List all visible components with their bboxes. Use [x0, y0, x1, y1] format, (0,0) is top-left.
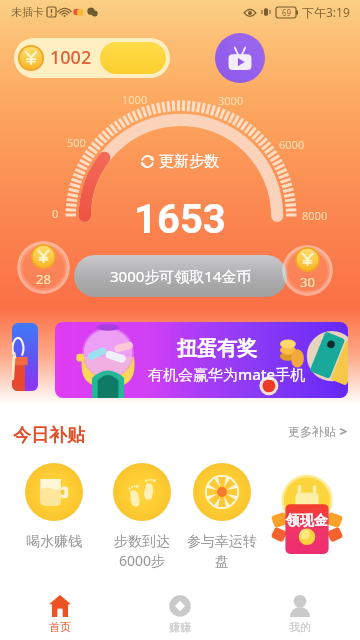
- button[interactable]: 更多补贴: [288, 424, 348, 439]
- button[interactable]: 赚赚: [120, 589, 240, 634]
- staticText: 28: [36, 270, 51, 288]
- button[interactable]: 领现金: [267, 460, 347, 556]
- staticText: 8000: [302, 208, 328, 223]
- staticText: 1000: [122, 92, 148, 107]
- button[interactable]: 30: [282, 245, 333, 296]
- staticText: 3000步可领取14金币: [110, 266, 252, 286]
- staticText: 未插卡: [11, 5, 44, 19]
- staticText: 30: [300, 273, 315, 291]
- staticText: 3000: [218, 93, 244, 108]
- button[interactable]: 扭蛋有奖: [55, 322, 348, 398]
- staticText: 6000: [279, 137, 305, 152]
- button[interactable]: 观看视频: [215, 33, 265, 83]
- staticText: 扭蛋有奖: [177, 336, 257, 361]
- staticText: 今日补贴: [13, 424, 85, 447]
- staticText: 步数到达 6000步: [114, 533, 170, 571]
- staticText: 喝水赚钱: [26, 533, 82, 551]
- staticText: 500: [67, 135, 86, 150]
- button[interactable]: [12, 323, 38, 391]
- button[interactable]: 我的: [240, 589, 360, 634]
- button[interactable]: 参与幸运转 盘: [182, 460, 262, 570]
- staticText: 领现金: [286, 512, 328, 530]
- staticText: 参与幸运转 盘: [187, 533, 257, 570]
- staticText: 0: [52, 206, 59, 221]
- button[interactable]: 喝水赚钱: [14, 460, 94, 551]
- button[interactable]: 步数到达 6000步: [102, 460, 182, 571]
- staticText: 1653: [134, 196, 226, 243]
- staticText: 我的: [289, 620, 311, 634]
- staticText: 更新步数: [159, 152, 219, 171]
- button[interactable]: 3000步可领取14金币: [74, 255, 287, 297]
- button[interactable]: 28: [17, 241, 70, 294]
- button[interactable]: 1002: [14, 38, 170, 78]
- staticText: 赚赚: [169, 620, 191, 634]
- staticText: 下午3:19: [302, 4, 350, 20]
- staticText: 有机会赢华为mate手机: [148, 364, 306, 384]
- staticText: 1002: [50, 45, 92, 70]
- staticText: 更多补贴: [288, 424, 336, 439]
- staticText: 69: [282, 7, 292, 18]
- button[interactable]: 首页: [0, 589, 120, 634]
- button[interactable]: 更新步数: [137, 151, 223, 172]
- staticText: 首页: [49, 620, 71, 634]
